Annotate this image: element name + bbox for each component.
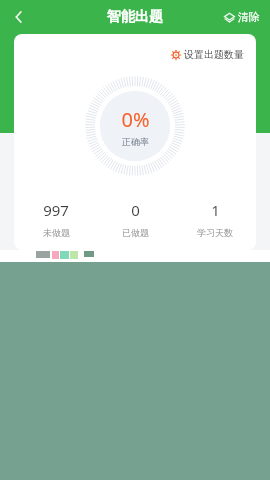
- button[interactable]: 清除: [222, 6, 262, 28]
- button[interactable]: 设置出题数量: [169, 46, 246, 63]
- staticText: 智能出题: [107, 8, 163, 26]
- staticText: 0%: [121, 106, 150, 133]
- staticText: 997: [43, 200, 69, 220]
- staticText: 设置出题数量: [184, 48, 244, 61]
- button[interactable]: 997: [18, 200, 94, 238]
- staticText: 学习天数: [197, 227, 233, 238]
- staticText: 正确率: [122, 136, 149, 147]
- staticText: 1: [211, 200, 220, 220]
- button[interactable]: Back: [4, 2, 34, 32]
- staticText: 未做题: [43, 227, 70, 238]
- staticText: 已做题: [122, 227, 149, 238]
- button[interactable]: 1: [177, 200, 253, 238]
- staticText: 清除: [238, 10, 260, 24]
- staticText: 0: [131, 200, 140, 220]
- button[interactable]: 0: [97, 200, 173, 238]
